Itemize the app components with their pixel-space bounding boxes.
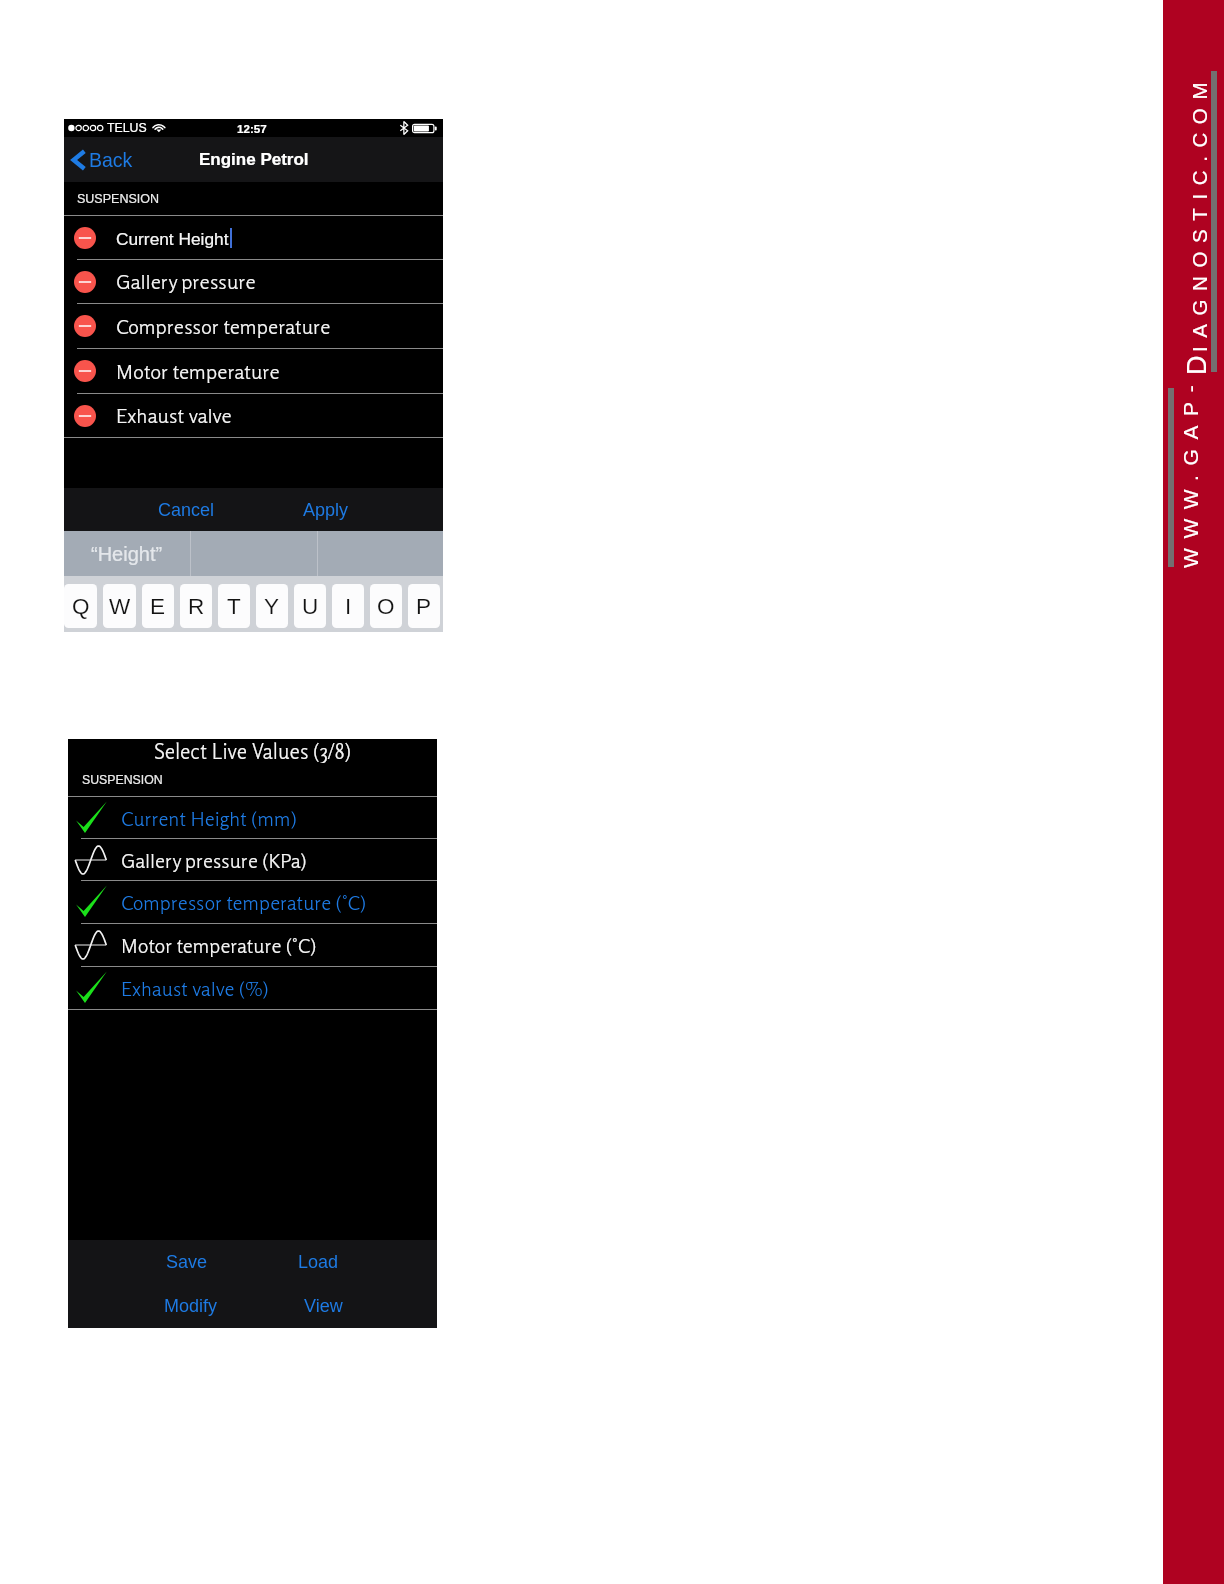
staticText: Modify — [164, 1296, 218, 1316]
staticText: IAGNOSTIC.COM — [1188, 73, 1211, 352]
button[interactable]: Remove Gallery pressure — [74, 271, 96, 293]
staticText: SUSPENSION — [77, 192, 159, 206]
button[interactable]: I — [332, 584, 364, 628]
staticText: Q — [72, 594, 90, 619]
staticText: “Height” — [91, 543, 163, 565]
staticText: O — [377, 594, 395, 619]
button[interactable]: Back — [72, 137, 133, 182]
staticText: Exhaust valve — [116, 403, 232, 428]
staticText: Engine Petrol — [199, 150, 309, 169]
staticText: D — [1182, 352, 1212, 375]
other: Not selected — [74, 841, 114, 879]
button[interactable]: Not selected — [68, 924, 437, 966]
staticText: View — [304, 1296, 343, 1316]
staticText: Exhaust valve (%) — [121, 976, 269, 1000]
staticText: 12:57 — [237, 122, 267, 135]
staticText: E — [150, 594, 166, 619]
other: Selected — [74, 969, 114, 1007]
staticText: R — [188, 594, 205, 619]
staticText: U — [302, 594, 319, 619]
button[interactable]: Q — [64, 584, 97, 628]
staticText: SUSPENSION — [82, 773, 163, 787]
button[interactable]: E — [142, 584, 174, 628]
button[interactable]: Remove Compressor temperature — [74, 315, 96, 337]
staticText: WWW.GAP- — [1179, 375, 1202, 568]
staticText: Current Height — [116, 229, 229, 248]
button[interactable]: “Height” — [64, 531, 190, 576]
button[interactable]: O — [370, 584, 402, 628]
staticText: Current Height (mm) — [121, 806, 297, 830]
staticText: Select Live Values (3/8) — [154, 739, 351, 763]
button[interactable]: Save — [68, 1240, 253, 1284]
staticText: Gallery pressure (KPa) — [121, 848, 307, 872]
staticText: Motor temperature (˚C) — [121, 933, 317, 957]
button[interactable]: Remove Motor temperature — [74, 360, 96, 382]
button[interactable]: Remove Compressor temperature — [64, 304, 443, 348]
staticText: TELUS — [107, 121, 147, 135]
button[interactable]: Remove Current Height — [74, 227, 96, 249]
staticText: P — [416, 594, 432, 619]
staticText: W — [109, 594, 131, 619]
staticText: Save — [166, 1252, 208, 1272]
button[interactable]: R — [180, 584, 212, 628]
button[interactable]: Not selected — [68, 839, 437, 880]
staticText: Back — [89, 149, 133, 171]
button[interactable]: View — [253, 1284, 437, 1328]
other: Selected — [74, 799, 114, 837]
staticText: Motor temperature — [116, 359, 280, 384]
button[interactable]: Apply — [254, 488, 443, 531]
button[interactable]: U — [294, 584, 326, 628]
staticText: T — [227, 594, 241, 619]
button[interactable]: Remove Exhaust valve — [64, 394, 443, 437]
button[interactable]: T — [218, 584, 250, 628]
button[interactable]: Modify — [68, 1284, 253, 1328]
staticText: Gallery pressure — [116, 269, 256, 294]
button[interactable]: W — [103, 584, 136, 628]
button[interactable]: Remove Current Height — [64, 216, 443, 259]
button[interactable]: Selected — [68, 967, 437, 1009]
button[interactable]: Remove Motor temperature — [64, 349, 443, 393]
staticText: Load — [298, 1252, 339, 1272]
button[interactable]: Remove Exhaust valve — [74, 405, 96, 427]
staticText: Compressor temperature (˚C) — [121, 890, 367, 914]
button[interactable]: Selected — [68, 797, 437, 838]
staticText: Apply — [303, 500, 349, 520]
staticText: I — [345, 594, 352, 619]
button[interactable]: Load — [253, 1240, 437, 1284]
button[interactable]: Y — [256, 584, 288, 628]
other: Selected — [74, 883, 114, 921]
staticText: Y — [264, 594, 280, 619]
staticText: Cancel — [158, 500, 215, 520]
button[interactable]: Selected — [68, 881, 437, 923]
other: Not selected — [74, 926, 114, 964]
button[interactable]: P — [408, 584, 440, 628]
button[interactable]: Remove Gallery pressure — [64, 260, 443, 303]
button[interactable]: Cancel — [64, 488, 254, 531]
staticText: Compressor temperature — [116, 314, 331, 339]
